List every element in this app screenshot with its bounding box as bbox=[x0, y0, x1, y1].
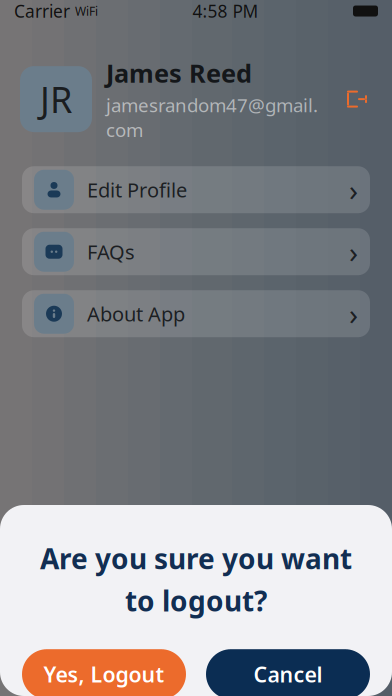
staticText: JR bbox=[40, 75, 72, 123]
staticText: › bbox=[349, 294, 358, 333]
button[interactable]: Log out bbox=[342, 82, 372, 116]
staticText: James Reed bbox=[106, 56, 252, 90]
staticText: About App bbox=[87, 300, 185, 327]
staticText: Are you sure you want bbox=[40, 540, 352, 577]
staticText: WiFi bbox=[75, 3, 98, 19]
button[interactable]: FAQs bbox=[22, 228, 370, 275]
staticText: FAQs bbox=[87, 238, 135, 265]
staticText: jamesrandom47@gmail.com bbox=[106, 93, 318, 142]
staticText: Carrier bbox=[14, 0, 70, 22]
button[interactable]: Edit Profile bbox=[22, 166, 370, 213]
staticText: Cancel bbox=[253, 660, 322, 688]
staticText: › bbox=[349, 170, 358, 209]
button[interactable]: About App bbox=[22, 290, 370, 337]
staticText: 4:58 PM bbox=[192, 0, 258, 22]
staticText: Yes, Logout bbox=[43, 660, 164, 688]
button[interactable]: Cancel bbox=[206, 649, 370, 696]
staticText: to logout? bbox=[125, 582, 267, 619]
staticText: › bbox=[349, 232, 358, 271]
staticText: Edit Profile bbox=[87, 176, 187, 203]
button[interactable]: Yes, Logout bbox=[22, 649, 186, 696]
